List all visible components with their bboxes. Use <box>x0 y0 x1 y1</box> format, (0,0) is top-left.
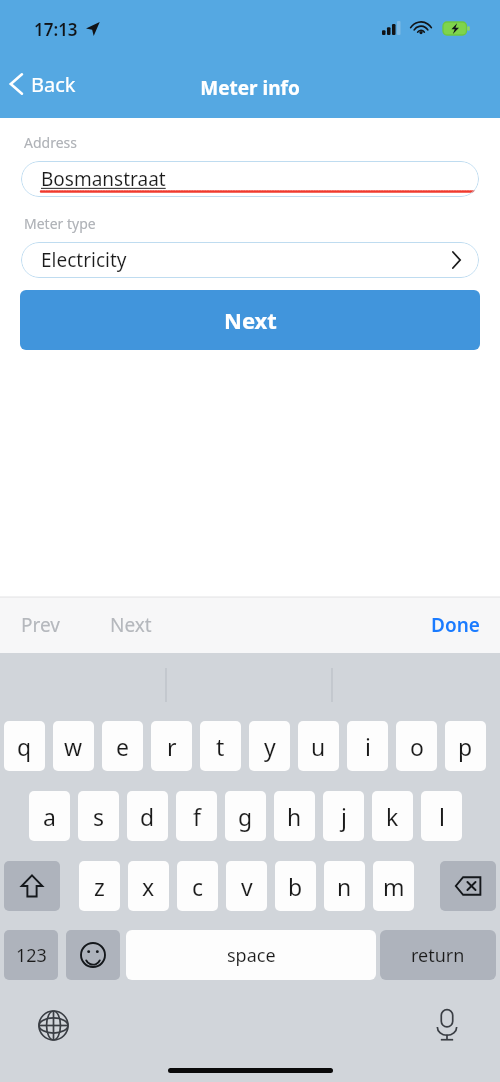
button[interactable]: return <box>380 930 496 980</box>
button[interactable]: Dictation <box>425 1003 469 1047</box>
staticText: t <box>216 731 225 762</box>
button[interactable]: Shift <box>4 861 60 911</box>
staticText: k <box>386 801 399 832</box>
button[interactable]: Backspace <box>440 861 496 911</box>
staticText: b <box>288 871 303 902</box>
staticText: e <box>116 731 129 762</box>
button[interactable]: f <box>176 791 217 841</box>
staticText: f <box>193 801 201 832</box>
staticText: Bosmanstraat <box>41 166 166 192</box>
staticText: Next <box>224 305 277 335</box>
staticText: g <box>238 801 253 832</box>
button[interactable]: j <box>323 791 364 841</box>
staticText: y <box>264 731 276 762</box>
button[interactable]: Next <box>97 606 165 644</box>
button[interactable]: u <box>298 721 339 771</box>
button[interactable]: n <box>324 861 365 911</box>
staticText: r <box>167 731 177 762</box>
button[interactable]: y <box>249 721 290 771</box>
button[interactable]: l <box>421 791 462 841</box>
staticText: j <box>341 801 347 832</box>
button[interactable]: o <box>396 721 437 771</box>
button[interactable]: s <box>78 791 119 841</box>
staticText: v <box>241 871 253 902</box>
staticText: 17:13 <box>34 18 78 41</box>
button[interactable]: Bosmanstraat <box>21 161 479 197</box>
button[interactable]: Done <box>423 606 488 644</box>
button[interactable]: d <box>127 791 168 841</box>
staticText: q <box>17 731 32 762</box>
button[interactable]: w <box>53 721 94 771</box>
staticText: o <box>410 731 424 762</box>
staticText: Done <box>431 612 480 638</box>
staticText: Electricity <box>41 247 127 273</box>
button[interactable]: a <box>29 791 70 841</box>
staticText: p <box>458 731 473 762</box>
button[interactable]: t <box>200 721 241 771</box>
button[interactable]: g <box>225 791 266 841</box>
button[interactable]: Next <box>20 290 480 350</box>
staticText: n <box>337 871 352 902</box>
button[interactable]: Electricity <box>21 242 479 278</box>
button[interactable]: h <box>274 791 315 841</box>
staticText: 123 <box>16 943 47 968</box>
button[interactable]: b <box>275 861 316 911</box>
staticText: h <box>287 801 302 832</box>
staticText: space <box>227 943 276 968</box>
button[interactable]: Emoji <box>66 930 120 980</box>
button[interactable]: r <box>151 721 192 771</box>
button[interactable]: e <box>102 721 143 771</box>
staticText: l <box>439 801 445 832</box>
staticText: Prev <box>21 612 60 638</box>
staticText: a <box>43 801 56 832</box>
staticText: s <box>93 801 105 832</box>
staticText: Address <box>24 133 77 152</box>
staticText: i <box>365 731 371 762</box>
button[interactable]: v <box>226 861 267 911</box>
button[interactable]: z <box>79 861 120 911</box>
staticText: return <box>411 943 465 968</box>
staticText: z <box>94 871 105 902</box>
button[interactable]: q <box>4 721 45 771</box>
button[interactable]: Back <box>0 64 88 104</box>
staticText: Back <box>31 71 76 98</box>
staticText: x <box>142 871 155 902</box>
button[interactable]: m <box>373 861 414 911</box>
button[interactable]: Change keyboard <box>31 1003 75 1047</box>
staticText: Next <box>110 612 152 638</box>
button[interactable]: Prev <box>8 606 73 644</box>
staticText: m <box>383 871 405 902</box>
staticText: u <box>311 731 326 762</box>
staticText: Meter type <box>24 214 96 233</box>
staticText: c <box>192 871 204 902</box>
staticText: w <box>64 731 83 762</box>
button[interactable]: p <box>445 721 486 771</box>
button[interactable]: i <box>347 721 388 771</box>
button[interactable]: c <box>177 861 218 911</box>
staticText: d <box>140 801 155 832</box>
button[interactable]: 123 <box>4 930 58 980</box>
button[interactable]: k <box>372 791 413 841</box>
button[interactable]: space <box>126 930 376 980</box>
staticText: Meter info <box>0 75 500 101</box>
button[interactable]: x <box>128 861 169 911</box>
